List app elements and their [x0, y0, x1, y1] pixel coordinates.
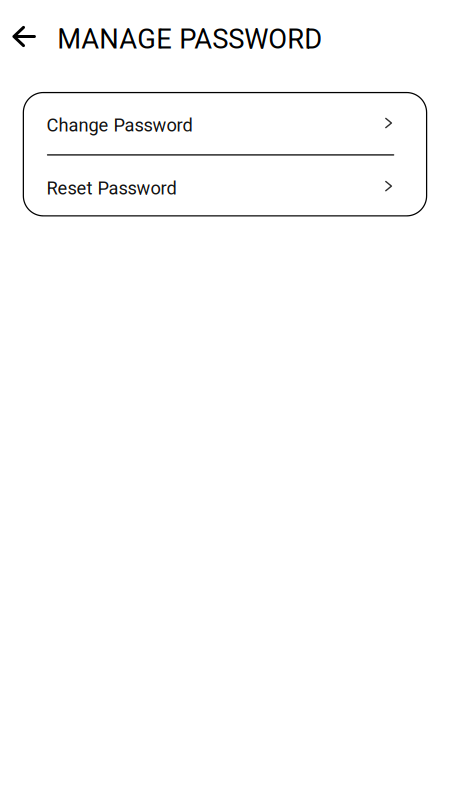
staticText: Change Password: [46, 115, 192, 136]
staticText: MANAGE PASSWORD: [57, 23, 322, 55]
button[interactable]: Change Password: [23, 92, 427, 154]
button[interactable]: Reset Password: [23, 156, 427, 217]
staticText: Reset Password: [46, 178, 176, 199]
button[interactable]: Back: [0, 25, 57, 47]
